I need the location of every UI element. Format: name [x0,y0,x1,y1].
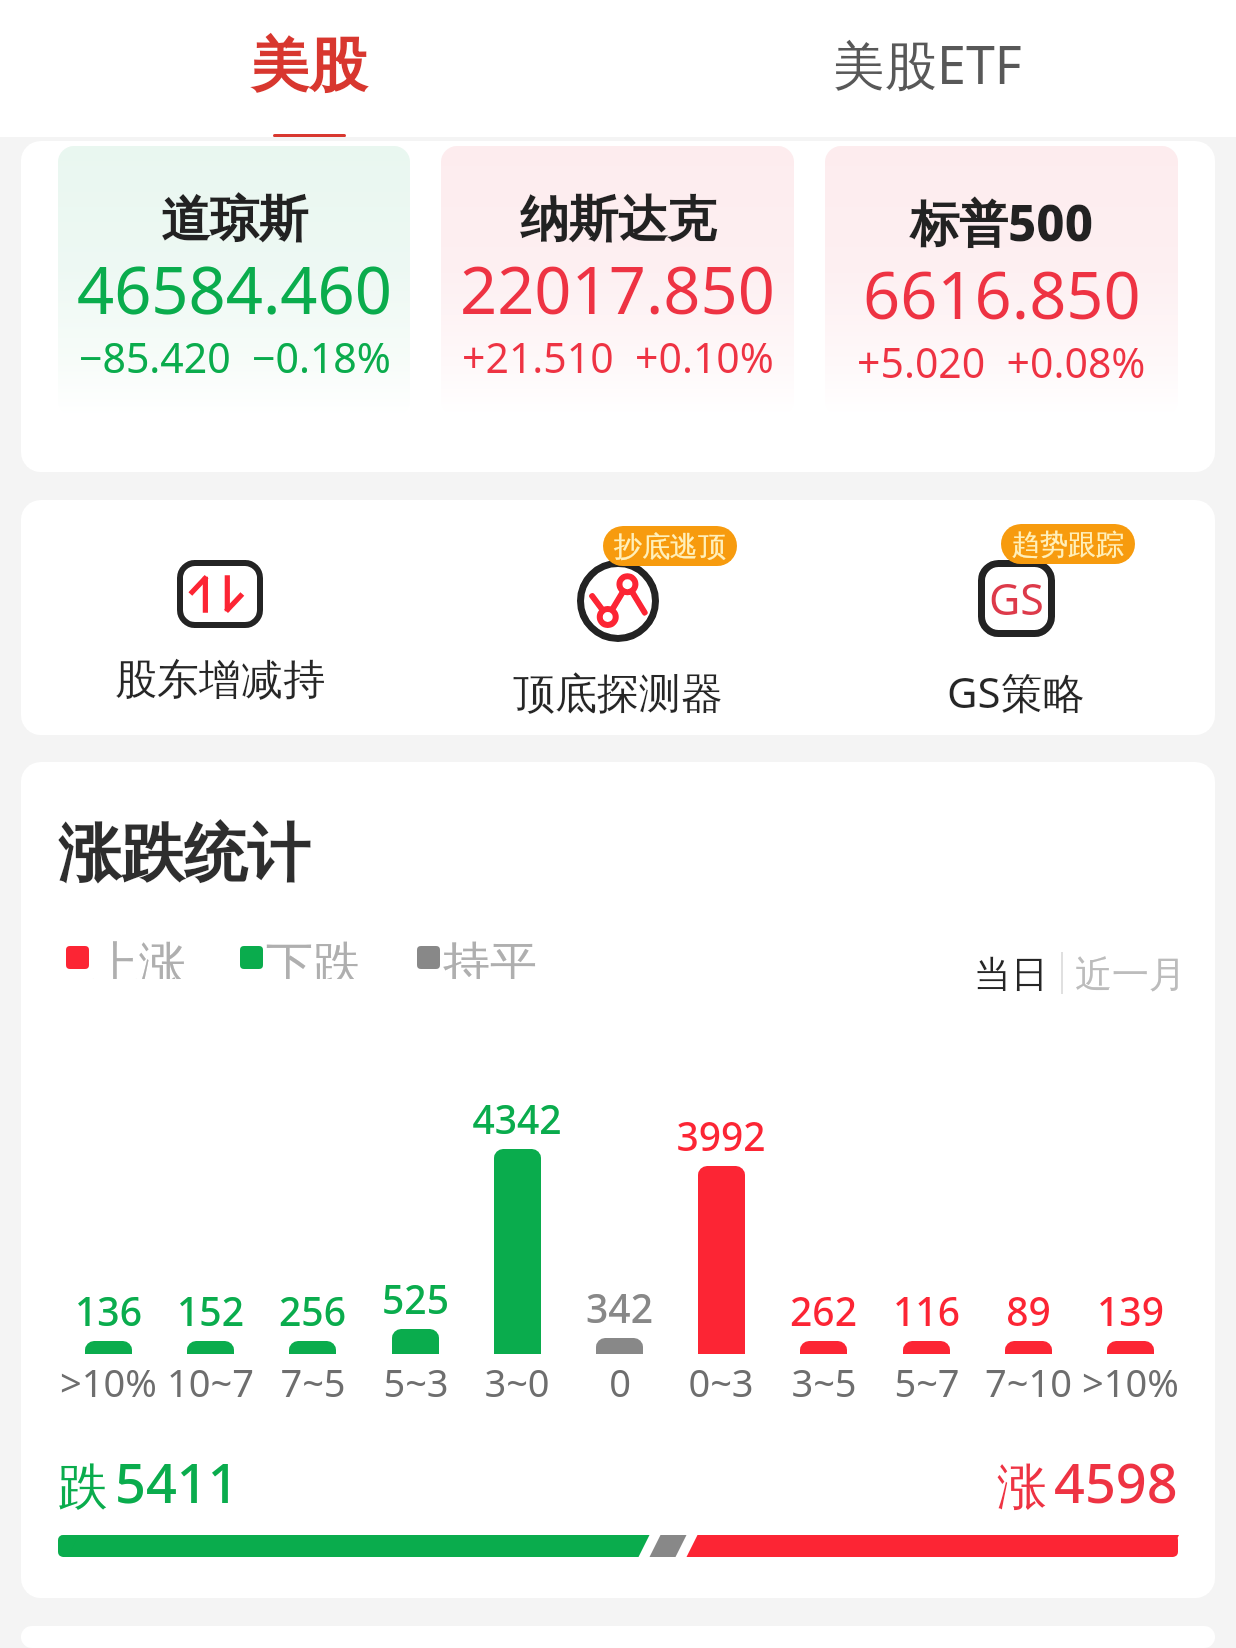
staticText: 持平 [443,935,537,979]
button[interactable]: 美股 [0,0,618,137]
staticText: 0 [609,1356,631,1400]
button[interactable]: 道琼斯 [58,146,410,416]
staticText: 152 [177,1284,244,1337]
staticText: −85.420 −0.18% [79,329,391,385]
button[interactable]: 当日 [974,951,1048,995]
staticText: 10~7 [167,1356,254,1400]
staticText: 3~0 [484,1356,550,1400]
staticText: 涨跌统计 [58,814,310,893]
staticText: 美股 [251,29,367,102]
staticText: 89 [1006,1284,1051,1337]
staticText: 顶底探测器 [513,668,723,721]
staticText: 趋势跟踪 [1012,527,1124,562]
button[interactable]: 顶底探测器 [419,500,817,721]
staticText: 7~5 [280,1356,346,1400]
staticText: 5~3 [383,1356,449,1400]
staticText: 4598 [1054,1445,1178,1519]
button[interactable]: 股东增减持 [21,500,419,707]
staticText: 抄底逃顶 [614,529,726,564]
staticText: >10% [1082,1356,1179,1400]
staticText: 7~10 [985,1356,1072,1400]
staticText: +5.020 +0.08% [857,334,1146,390]
staticText: 0~3 [688,1356,754,1400]
staticText: 46584.460 [77,245,392,334]
button[interactable]: 美股ETF [618,0,1236,99]
staticText: 标普500 [910,189,1093,256]
staticText: 股东增减持 [115,654,325,707]
staticText: 下跌 [266,935,360,979]
button[interactable]: 近一月 [1075,951,1186,995]
staticText: 256 [279,1284,346,1337]
staticText: 5411 [115,1445,239,1519]
staticText: 上涨 [92,935,186,979]
staticText: 139 [1097,1284,1164,1337]
staticText: 136 [75,1284,142,1337]
staticText: 3~5 [791,1356,857,1400]
staticText: GS策略 [947,663,1085,720]
staticText: 116 [893,1284,960,1337]
staticText: 当日 [974,951,1048,995]
other: 顶底探测器 [577,560,659,642]
staticText: +21.510 +0.10% [462,329,774,385]
staticText: 262 [790,1284,857,1337]
button[interactable]: GS策略 [817,500,1215,720]
staticText: 342 [586,1281,653,1334]
button[interactable]: 纳斯达克 [441,146,794,416]
other: 股东增减持 [177,560,263,628]
staticText: >10% [60,1356,157,1400]
staticText: 涨 [997,1456,1047,1519]
staticText: 美股ETF [833,28,1022,99]
staticText: 5~7 [894,1356,960,1400]
staticText: 22017.850 [460,245,775,334]
staticText: 近一月 [1075,951,1186,995]
staticText: 纳斯达克 [520,189,716,251]
staticText: GS [989,569,1044,628]
staticText: 道琼斯 [161,189,308,251]
other: GS策略 [978,560,1055,637]
button[interactable]: 标普500 [825,146,1178,416]
staticText: 6616.850 [863,250,1141,339]
staticText: 跌 [58,1456,108,1519]
staticText: 525 [382,1272,449,1325]
staticText: 3992 [676,1109,766,1162]
staticText: 4342 [472,1092,562,1145]
